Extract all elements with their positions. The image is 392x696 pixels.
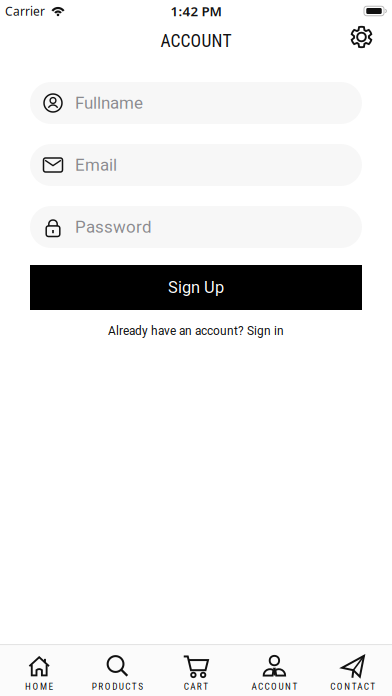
staticText: CONTACT [330,681,375,692]
staticText: Fullname [75,93,143,113]
button[interactable]: ACCOUNT [235,655,314,692]
staticText: Password [75,217,152,237]
staticText: ACCOUNT [251,681,297,692]
button[interactable]: CONTACT [314,655,392,692]
button[interactable]: Already have an account? Sign in [108,324,284,338]
button[interactable]: Fullname [0,82,392,124]
staticText: Carrier [5,3,45,19]
button[interactable]: Password [0,206,392,248]
staticText: CART [184,681,208,692]
button[interactable]: PRODUCTS [78,655,157,692]
button[interactable]: Settings [350,25,392,48]
staticText: Email [75,155,117,175]
button[interactable]: CART [157,655,235,692]
button[interactable]: Sign Up [0,265,392,310]
button[interactable]: HOME [0,655,78,692]
staticText: HOME [25,681,53,692]
staticText: ACCOUNT [160,31,231,51]
staticText: PRODUCTS [92,681,143,692]
button[interactable]: Email [0,144,392,186]
staticText: Sign Up [168,278,224,297]
staticText: Already have an account? Sign in [108,324,284,338]
staticText: 1:42 PM [170,2,221,20]
